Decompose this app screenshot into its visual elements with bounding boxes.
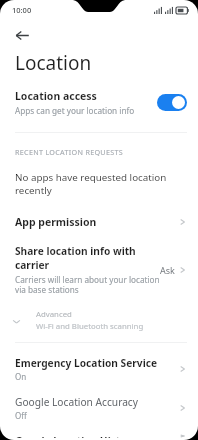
staticText: Google Location History [15, 434, 137, 438]
button[interactable]: Share location info with carrier [0, 242, 198, 297]
button[interactable]: Expand advanced [0, 307, 198, 334]
other: Expand advanced [6, 311, 26, 331]
staticText: Wi-Fi and Bluetooth scanning [36, 321, 144, 332]
staticText: App permission [15, 215, 178, 229]
button[interactable]: Location access toggle [157, 94, 187, 111]
button[interactable]: Emergency Location Service [0, 354, 198, 384]
staticText: Share location info with carrier [15, 244, 160, 272]
staticText: Advanced [36, 309, 72, 320]
button[interactable]: Location access [0, 87, 198, 118]
button[interactable]: App permission [0, 212, 198, 232]
button[interactable]: Google Location Accuracy [0, 393, 198, 423]
staticText: No apps have requested location recently [15, 171, 187, 197]
button[interactable]: Back [8, 21, 36, 49]
staticText: Apps can get your location info [15, 105, 135, 116]
staticText: Emergency Location Service [15, 356, 158, 370]
staticText: Location access [15, 89, 97, 103]
staticText: Off [15, 410, 27, 421]
staticText: 10:00 [12, 5, 32, 15]
staticText: RECENT LOCATION REQUESTS [15, 147, 123, 157]
staticText: On [15, 371, 27, 382]
staticText: Google Location Accuracy [15, 395, 138, 409]
staticText: Carriers will learn about your location … [15, 274, 160, 295]
staticText: Ask [160, 264, 175, 276]
staticText: Location [15, 50, 92, 76]
button[interactable]: Google Location History [0, 432, 198, 440]
